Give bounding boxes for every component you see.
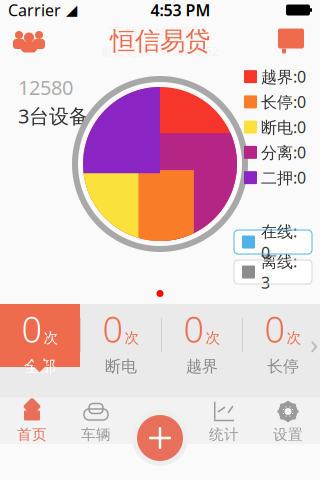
- button[interactable]: Add: [132, 410, 188, 466]
- staticText: 设置: [273, 425, 303, 443]
- staticText: 车辆: [81, 425, 111, 443]
- staticText: 首页: [17, 425, 47, 443]
- staticText: 恒信易贷: [110, 25, 210, 56]
- staticText: 4:53 PM: [150, 0, 210, 21]
- button[interactable]: 统计: [192, 396, 256, 444]
- staticText: 全部: [24, 357, 56, 376]
- staticText: 0: [183, 305, 204, 353]
- staticText: 0: [21, 305, 42, 353]
- staticText: 次: [124, 329, 139, 347]
- staticText: 断电:0: [261, 116, 306, 138]
- staticText: 3台设备: [18, 103, 89, 129]
- staticText: 在线:0: [261, 221, 297, 263]
- staticText: 下拉开始刷新...: [109, 23, 211, 42]
- staticText: ›: [310, 326, 318, 361]
- button[interactable]: 离线:3: [234, 260, 312, 284]
- staticText: 最后更新：今天 16:52: [101, 43, 219, 59]
- staticText: 0: [264, 305, 285, 353]
- staticText: Carrier: [8, 0, 61, 21]
- button[interactable]: 0: [0, 304, 80, 367]
- staticText: 断电: [105, 357, 137, 376]
- staticText: 统计: [209, 425, 239, 443]
- button[interactable]: 0: [162, 304, 242, 367]
- staticText: 二押:0: [261, 167, 306, 188]
- staticText: 次: [43, 329, 58, 347]
- button[interactable]: Messages: [268, 20, 314, 62]
- button[interactable]: 在线:0: [234, 230, 312, 254]
- staticText: 次: [205, 329, 220, 347]
- staticText: ◢: [66, 2, 77, 18]
- staticText: 分离:0: [261, 142, 306, 163]
- staticText: 越界:0: [261, 66, 306, 87]
- staticText: 0: [102, 305, 123, 353]
- staticText: 长停:0: [261, 91, 306, 112]
- staticText: 越界: [186, 357, 218, 376]
- button[interactable]: 首页: [0, 396, 64, 444]
- staticText: 长停: [267, 357, 299, 376]
- button[interactable]: 设置: [256, 396, 320, 444]
- button[interactable]: Contacts: [6, 20, 52, 62]
- staticText: 12580: [18, 74, 73, 101]
- button[interactable]: 车辆: [64, 396, 128, 444]
- staticText: 离线:3: [261, 251, 297, 293]
- staticText: 次: [286, 329, 301, 347]
- button[interactable]: 0: [243, 304, 320, 367]
- button[interactable]: 0: [81, 304, 161, 367]
